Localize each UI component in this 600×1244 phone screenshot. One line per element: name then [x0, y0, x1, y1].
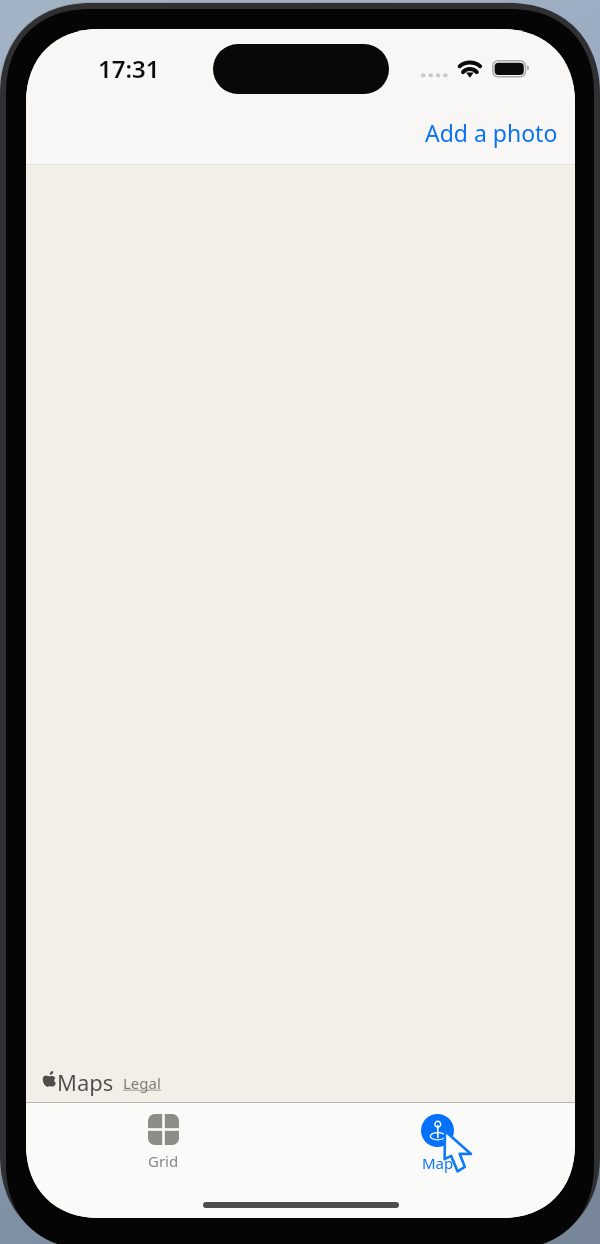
- button[interactable]: Map tab: [300, 1103, 575, 1178]
- button[interactable]: Grid tab: [26, 1103, 300, 1178]
- staticText: 17:31: [98, 52, 160, 85]
- staticText: Maps: [57, 1067, 114, 1097]
- staticText: Map: [422, 1153, 454, 1173]
- staticText: Legal: [123, 1073, 161, 1093]
- staticText: Add a photo: [425, 117, 558, 148]
- staticText: Grid: [148, 1151, 179, 1171]
- button[interactable]: Add a photo: [405, 109, 575, 156]
- button[interactable]: Legal: [123, 1073, 161, 1093]
